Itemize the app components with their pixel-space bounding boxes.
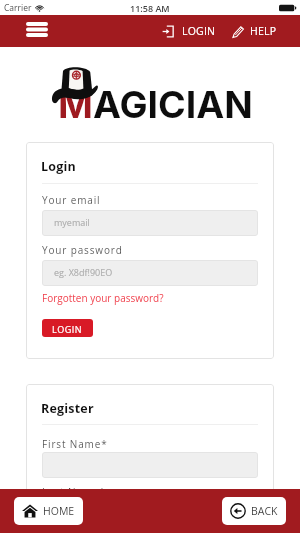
staticText: Login [41, 158, 76, 175]
staticText: HELP [250, 24, 277, 38]
staticText: 11:58 AM [130, 2, 170, 14]
staticText: Last Name* [42, 485, 106, 499]
button[interactable] [42, 452, 258, 478]
staticText: myemail [54, 216, 90, 228]
staticText: eg. X8df!90EO [54, 266, 113, 278]
button[interactable]: HOME [14, 497, 83, 525]
staticText: BACK [251, 504, 278, 518]
staticText: HOME [43, 504, 75, 518]
staticText: LOGIN [182, 24, 216, 38]
button[interactable]: Forgotten your password? [42, 291, 164, 305]
staticText: Register [41, 400, 94, 417]
button[interactable]: eg. X8df!90EO [42, 260, 258, 286]
button[interactable] [42, 502, 258, 528]
staticText: M [58, 82, 93, 127]
staticText: Your password [42, 243, 123, 257]
staticText: Your email [42, 193, 101, 207]
button[interactable]: Open navigation menu [19, 14, 55, 44]
staticText: Carrier [4, 2, 32, 14]
staticText: LOGIN [52, 323, 83, 335]
staticText: First Name* [42, 437, 108, 451]
button[interactable]: BACK [222, 497, 286, 525]
staticText: AGICIAN [93, 82, 253, 127]
button[interactable]: HELP [230, 19, 279, 43]
button[interactable]: LOGIN [42, 319, 93, 337]
button[interactable]: myemail [42, 210, 258, 236]
staticText: Forgotten your password? [42, 291, 164, 305]
button[interactable]: LOGIN [160, 19, 218, 43]
